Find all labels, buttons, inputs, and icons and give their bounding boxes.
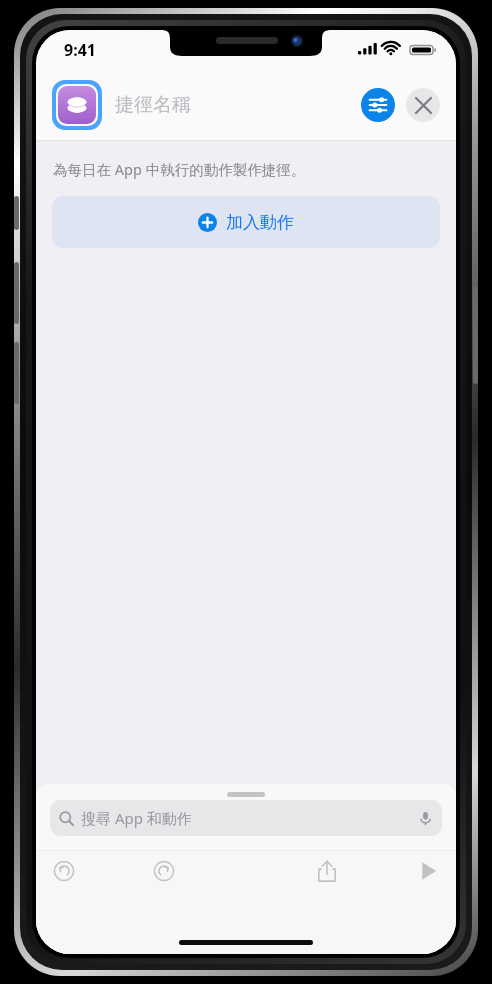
button[interactable]: 加入動作 xyxy=(52,196,440,248)
staticText: 為每日在 App 中執行的動作製作捷徑。 xyxy=(53,159,306,179)
staticText: 加入動作 xyxy=(226,212,294,233)
button[interactable]: 捷徑圖像 xyxy=(52,80,102,130)
button[interactable]: 捷徑名稱 xyxy=(115,93,361,117)
button[interactable]: 分享 xyxy=(311,855,343,887)
other: 語音輸入 xyxy=(418,811,433,826)
button[interactable]: 播放 xyxy=(412,855,444,887)
staticText: 搜尋 App 和動作 xyxy=(81,808,418,828)
button[interactable]: 重做 xyxy=(148,855,180,887)
button[interactable]: 還原 xyxy=(48,855,80,887)
button[interactable]: 關閉 xyxy=(406,88,440,122)
button[interactable]: 搜尋 App 和動作 xyxy=(50,800,442,836)
staticText: 9:41 xyxy=(64,39,96,61)
button[interactable]: 詳細資料 xyxy=(361,88,395,122)
